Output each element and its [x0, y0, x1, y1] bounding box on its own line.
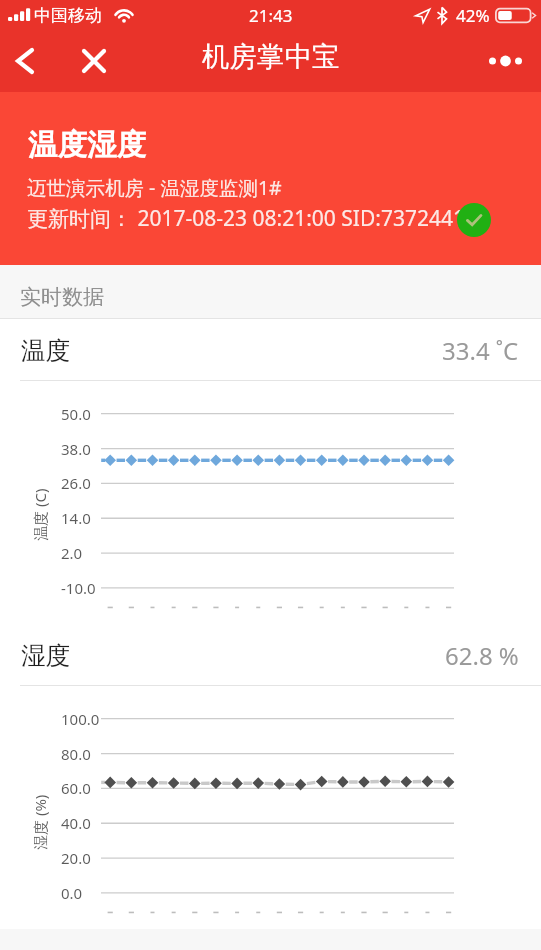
- staticText: 机房掌中宝: [202, 40, 340, 75]
- button[interactable]: 湿度: [0, 624, 541, 686]
- staticText: 中国移动: [34, 5, 102, 26]
- button[interactable]: Close: [72, 39, 116, 83]
- staticText: 温度湿度: [28, 127, 146, 164]
- staticText: 迈世演示机房 - 温湿度监测1#: [27, 174, 282, 201]
- staticText: 42%: [456, 4, 490, 27]
- staticText: 温度: [21, 335, 70, 366]
- staticText: 33.4 ˚C: [442, 334, 519, 367]
- staticText: 更新时间： 2017-08-23 08:21:00 SID:7372441: [27, 204, 466, 233]
- staticText: 湿度: [21, 640, 70, 671]
- button[interactable]: Status OK: [457, 203, 491, 237]
- button[interactable]: Back: [3, 39, 47, 83]
- button[interactable]: 温度: [0, 319, 541, 381]
- staticText: 21:43: [249, 4, 293, 27]
- staticText: 实时数据: [20, 284, 104, 310]
- button[interactable]: More options: [483, 39, 527, 83]
- staticText: 62.8 %: [445, 639, 519, 672]
